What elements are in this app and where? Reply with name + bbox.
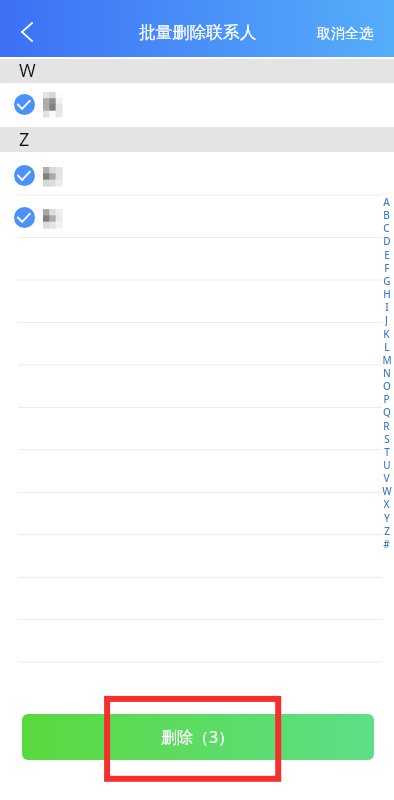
staticText: 批量删除联系人 (139, 22, 257, 43)
staticText: U (383, 458, 391, 471)
staticText: K (383, 327, 390, 340)
button[interactable]: 删除（3） (22, 714, 374, 760)
button[interactable]: 取消全选 (297, 0, 394, 54)
staticText: O (383, 379, 391, 392)
staticText: N (383, 366, 391, 379)
staticText: V (383, 471, 390, 484)
staticText: E (384, 248, 390, 261)
staticText: F (384, 261, 390, 274)
button[interactable]: Back (6, 10, 48, 52)
button[interactable] (0, 83, 394, 127)
staticText: D (383, 234, 391, 247)
staticText: B (383, 208, 390, 221)
staticText: W (382, 484, 392, 497)
staticText: H (383, 287, 391, 300)
staticText: M (382, 353, 392, 366)
staticText: C (383, 221, 390, 234)
staticText: Z (19, 127, 30, 152)
staticText: Q (383, 405, 391, 418)
staticText: X (383, 497, 390, 510)
button[interactable] (0, 195, 394, 238)
staticText: Z (384, 524, 390, 537)
staticText: S (384, 432, 390, 445)
staticText: T (384, 445, 390, 458)
staticText: 删除（3） (161, 726, 235, 748)
staticText: W (19, 58, 36, 82)
staticText: Y (384, 511, 390, 524)
staticText: L (384, 340, 390, 353)
staticText: G (383, 274, 391, 287)
staticText: I (385, 300, 389, 313)
staticText: P (383, 392, 390, 405)
staticText: 取消全选 (317, 25, 373, 43)
staticText: A (383, 195, 390, 208)
button[interactable] (0, 152, 394, 195)
button[interactable]: Alphabet index (379, 195, 394, 551)
staticText: # (383, 537, 390, 550)
staticText: R (383, 419, 390, 432)
staticText: J (385, 313, 388, 326)
